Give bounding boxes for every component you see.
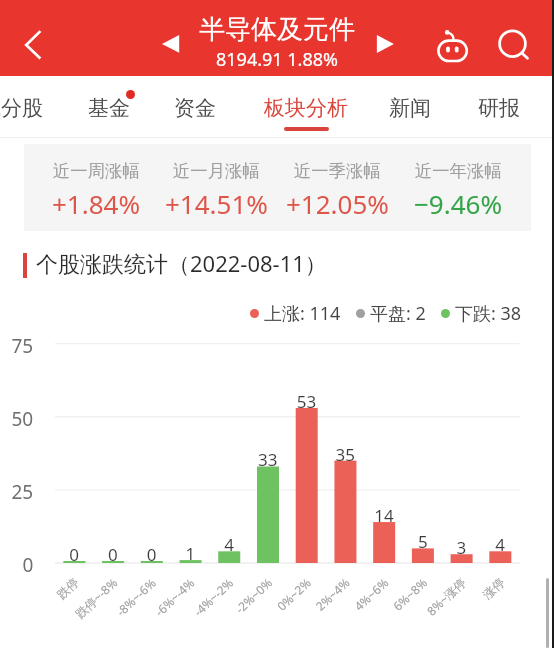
staticText: 半导体及元件	[199, 13, 355, 46]
staticText: 平盘: 2	[370, 301, 426, 326]
button[interactable]: Search	[486, 16, 546, 72]
staticText: 近一月涨幅	[173, 160, 260, 182]
staticText: 上涨: 114	[264, 301, 341, 326]
staticText: 资金	[174, 95, 216, 121]
button[interactable]: Next sector	[360, 18, 411, 70]
staticText: 8194.91 1.88%	[216, 47, 338, 72]
staticText: 下跌: 38	[455, 301, 522, 326]
button[interactable]: 新闻	[367, 76, 453, 137]
staticText: 研报	[478, 95, 520, 121]
staticText: 近一年涨幅	[415, 160, 502, 182]
staticText: 近一季涨幅	[294, 160, 381, 182]
button[interactable]: 成分股	[0, 76, 65, 137]
staticText: 基金	[88, 95, 130, 121]
staticText: 个股涨跌统计（2022-08-11）	[36, 248, 327, 278]
button[interactable]: 板块分析	[242, 76, 370, 137]
button[interactable]: 资金	[152, 76, 238, 137]
staticText: 成分股	[0, 95, 43, 121]
staticText: +14.51%	[165, 186, 268, 221]
staticText: 板块分析	[264, 95, 348, 121]
staticText: +1.84%	[52, 186, 141, 221]
button[interactable]: Back	[0, 14, 62, 76]
button[interactable]: 基金	[66, 76, 152, 137]
staticText: −9.46%	[414, 186, 503, 221]
staticText: 近一周涨幅	[53, 160, 140, 182]
staticText: 新闻	[389, 95, 431, 121]
staticText: +12.05%	[286, 186, 389, 221]
button[interactable]: Assistant	[424, 16, 480, 72]
button[interactable]: Previous sector	[145, 18, 196, 70]
button[interactable]: 研报	[456, 76, 542, 137]
